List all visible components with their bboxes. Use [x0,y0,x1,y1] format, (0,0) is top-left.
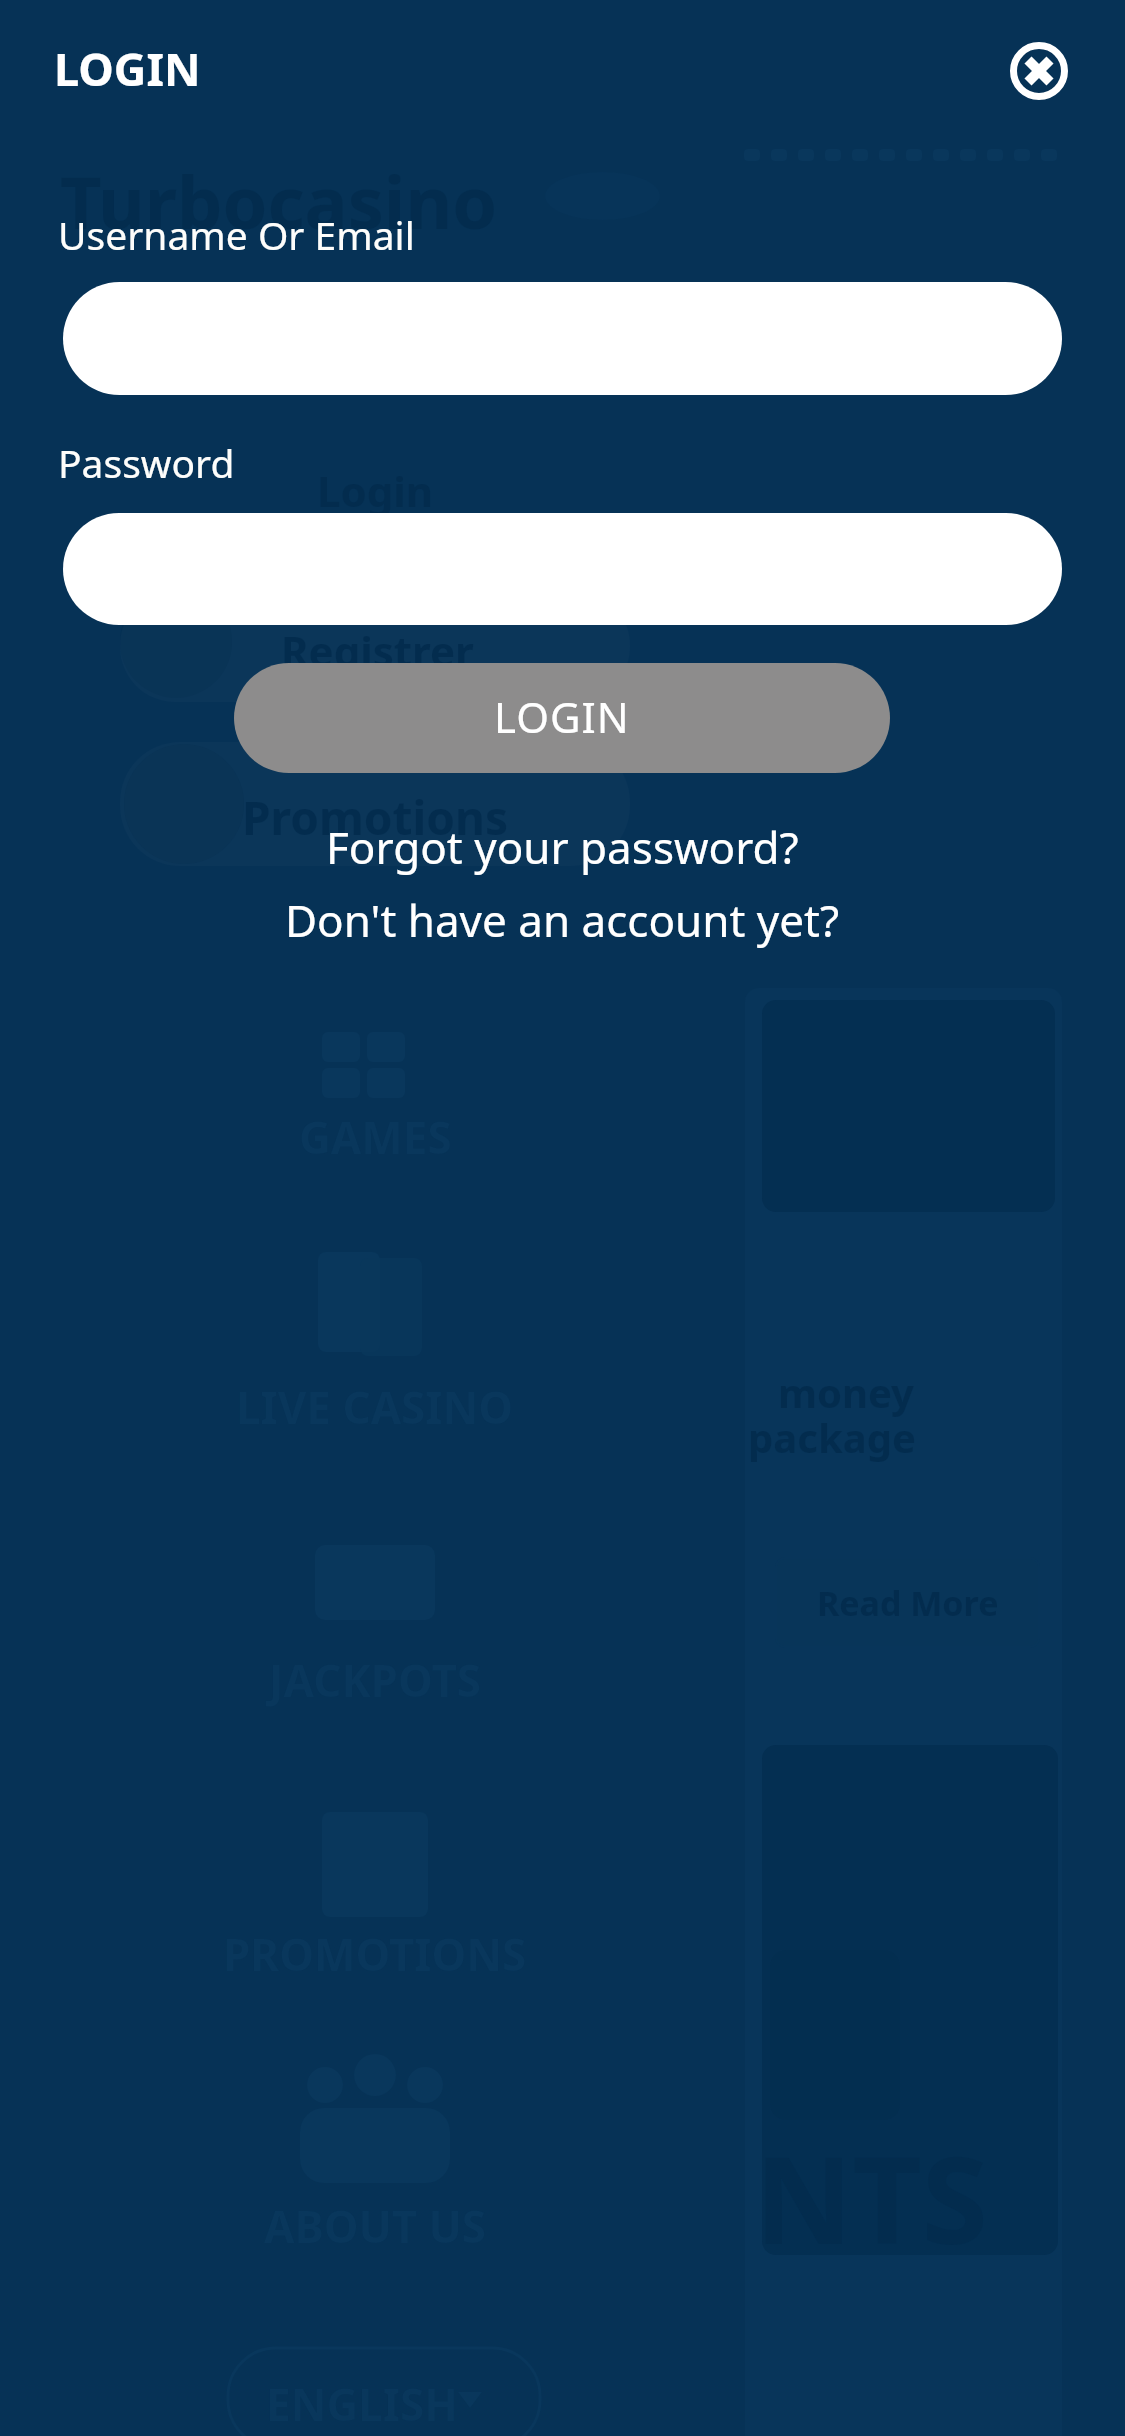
button[interactable] [63,513,1062,625]
staticText: Turbocasino [60,152,498,250]
staticText: Username Or Email [58,208,415,261]
staticText: Read More [817,1580,999,1626]
staticText: package [748,1410,916,1464]
staticText: Registrer [281,622,474,679]
staticText: Login [317,462,434,519]
button[interactable]: Forgot your password? [326,817,799,877]
button[interactable]: Don't have an account yet? [285,890,840,950]
button[interactable]: LOGIN [234,663,890,773]
staticText: LOGIN [494,688,630,745]
staticText: NTS [755,2116,988,2279]
staticText: LOGIN [54,38,201,99]
staticText: Promotions [242,786,509,849]
button[interactable] [63,282,1062,395]
staticText: money [778,1365,914,1419]
button[interactable] [1004,36,1074,106]
staticText: Password [58,436,235,489]
